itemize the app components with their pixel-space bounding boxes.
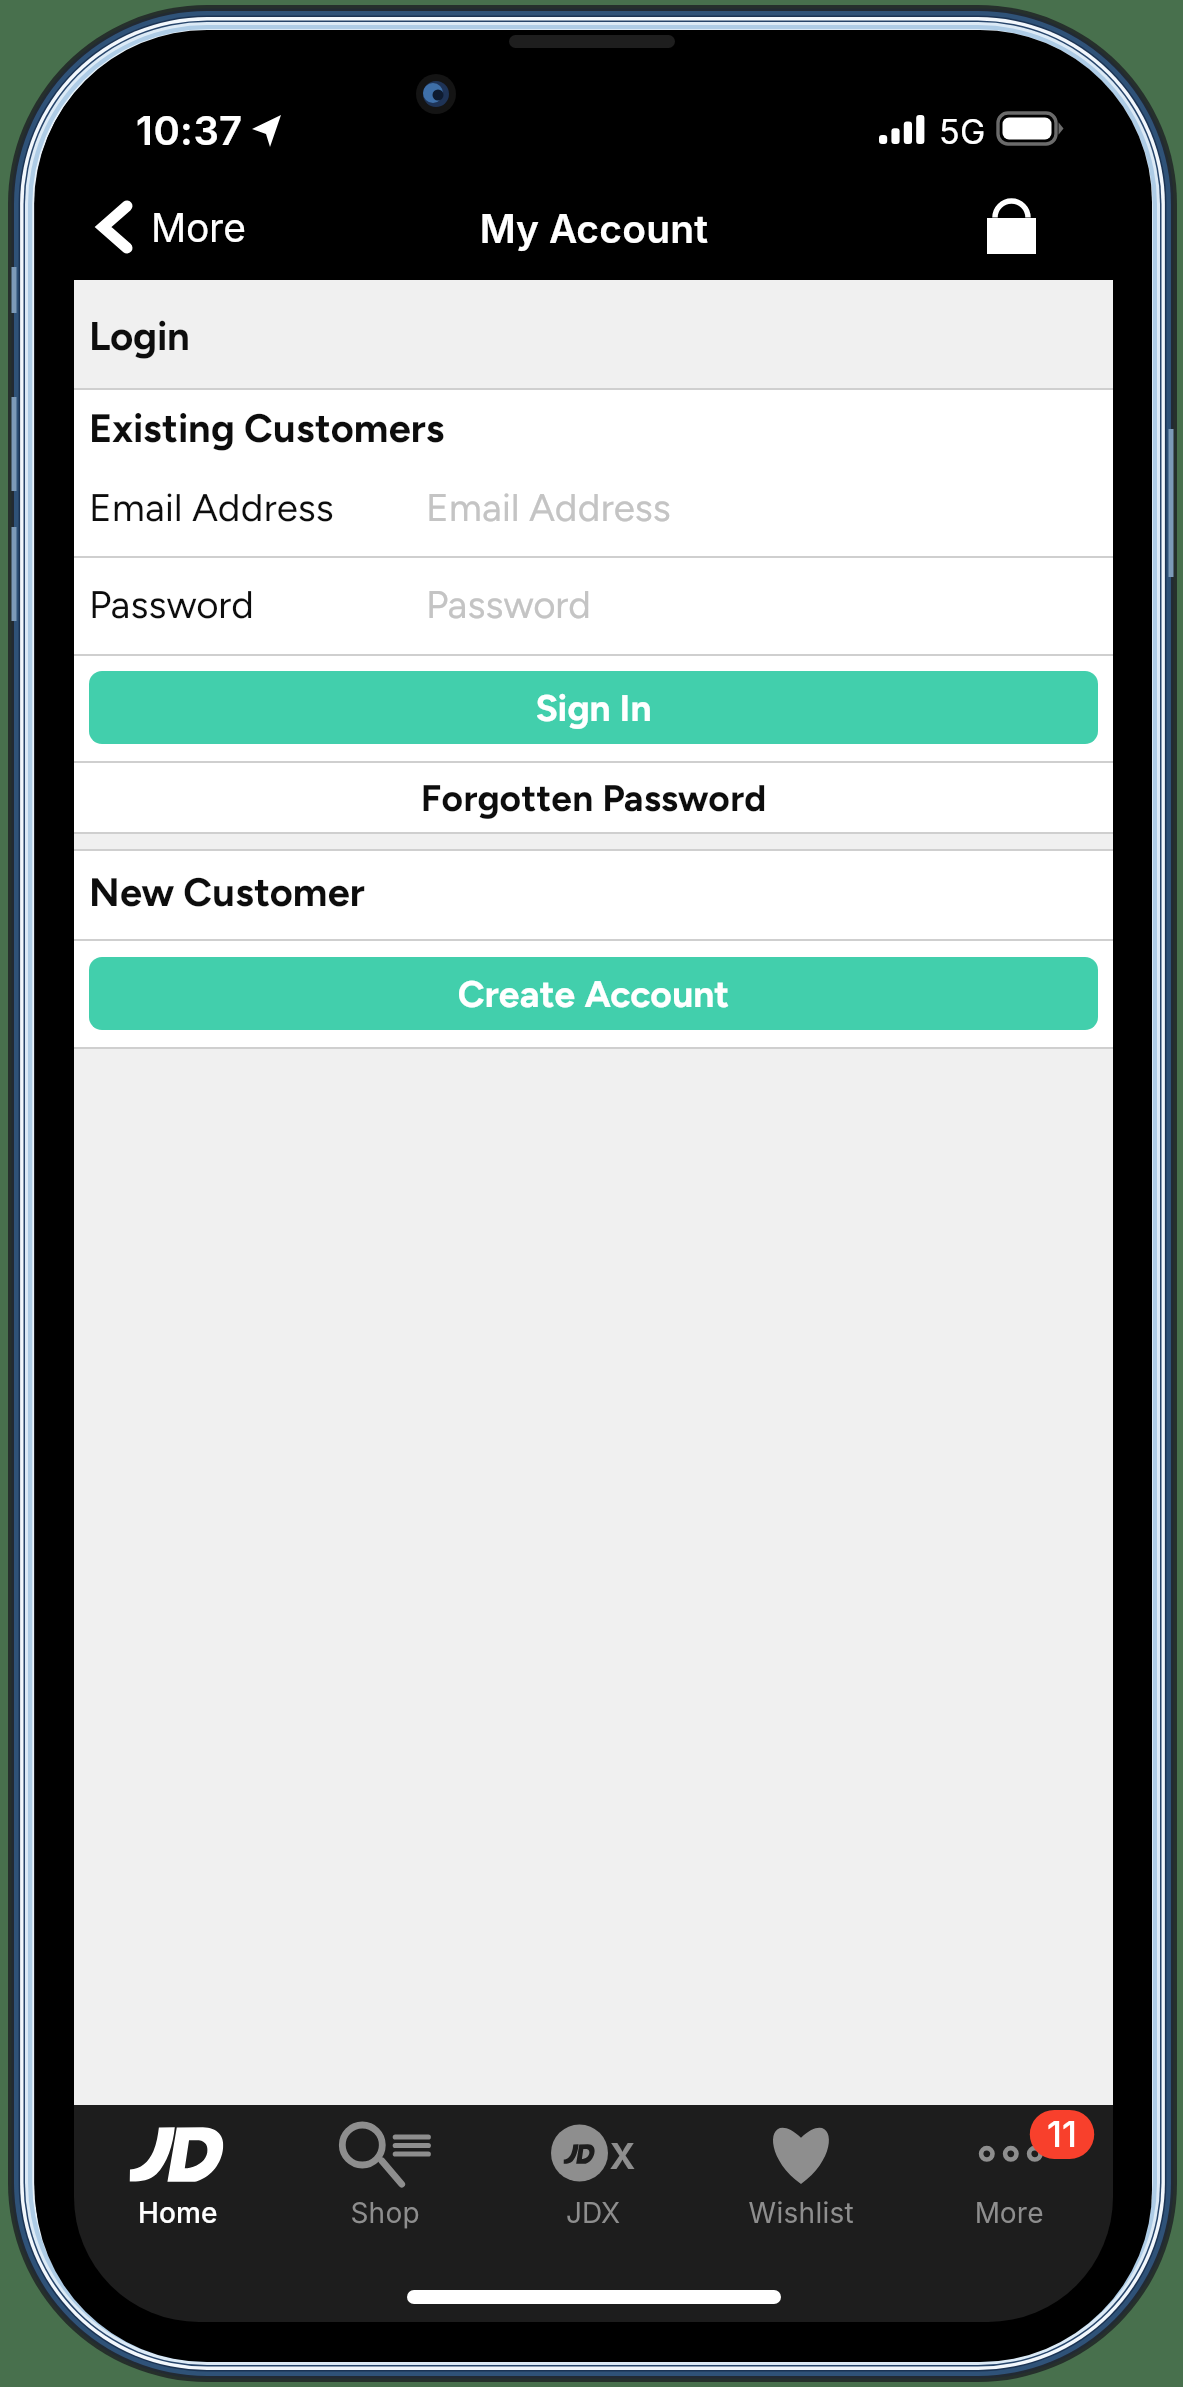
button[interactable]: Home <box>74 2105 281 2322</box>
button[interactable]: JDX <box>489 2105 697 2322</box>
button[interactable]: Shop <box>281 2105 489 2322</box>
button[interactable]: Email Address field <box>74 457 1113 556</box>
button[interactable]: Create Account <box>89 957 1098 1030</box>
button[interactable]: Password field <box>74 556 1113 654</box>
button[interactable]: Forgotten Password <box>74 763 1113 832</box>
button[interactable]: Back to More <box>95 190 260 266</box>
button[interactable]: Wishlist <box>697 2105 905 2322</box>
button[interactable]: Basket <box>975 190 1051 266</box>
button[interactable]: More <box>905 2105 1113 2322</box>
button[interactable]: Sign In <box>89 671 1098 744</box>
